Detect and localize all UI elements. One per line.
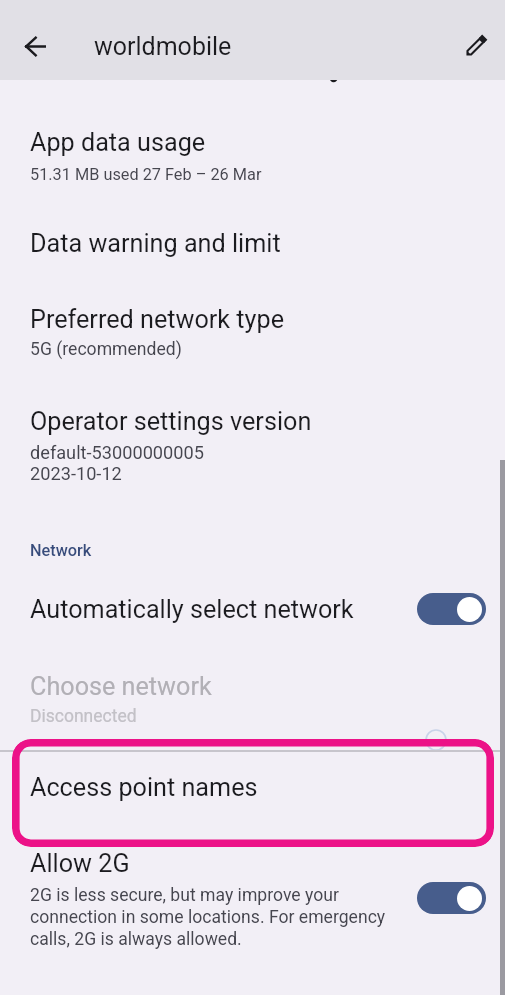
button[interactable]: Back (7, 18, 63, 74)
button[interactable]: Data warning and limit (30, 229, 281, 259)
staticText: 2023-10-12 (30, 463, 122, 484)
staticText: 5G (recommended) (30, 339, 182, 360)
button[interactable]: Automatically select network (417, 593, 486, 625)
button[interactable]: Operator settings version (30, 407, 312, 437)
button[interactable]: Allow 2G (417, 882, 486, 914)
staticText: 2G is less secure, but may improve your (30, 885, 339, 906)
button[interactable]: Automatically select network (30, 595, 354, 625)
button[interactable] (12, 739, 494, 847)
staticText: Disconnected (30, 706, 137, 727)
button[interactable]: Allow 2G (30, 849, 130, 879)
staticText: 51.31 MB used 27 Feb – 26 Mar (30, 165, 262, 184)
staticText: calls, 2G is always allowed. (30, 929, 242, 950)
staticText: default-53000000005 (30, 442, 204, 463)
button[interactable]: Choose network (30, 672, 212, 702)
staticText: worldmobile (94, 32, 232, 61)
button[interactable]: App data usage (30, 128, 206, 158)
button[interactable]: Preferred network type (30, 305, 285, 335)
staticText: Network (30, 541, 92, 560)
staticText: connection in some locations. For emerge… (30, 907, 386, 928)
button[interactable]: Edit (448, 17, 504, 73)
button[interactable]: Access point names (30, 773, 258, 803)
